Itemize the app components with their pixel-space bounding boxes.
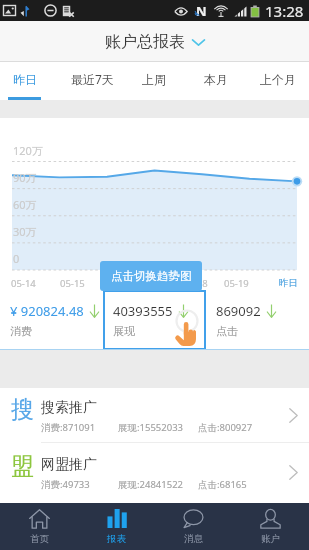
staticText: 点击:68165: [198, 478, 247, 491]
staticText: 上周: [142, 72, 166, 87]
staticText: 消费: [10, 324, 32, 338]
staticText: 昨日: [279, 277, 298, 289]
staticText: 本月: [204, 72, 228, 87]
staticText: 展现:15552033: [118, 421, 184, 434]
staticText: 展现: [113, 324, 135, 338]
staticText: 120万: [13, 143, 43, 158]
button[interactable]: ¥ 920824.48: [0, 290, 103, 350]
button[interactable]: 昨日: [0, 62, 61, 100]
staticText: 搜: [11, 395, 34, 424]
staticText: 05-14: [11, 277, 36, 290]
button[interactable]: 盟: [0, 443, 309, 501]
button[interactable]: 最近7天: [61, 62, 123, 100]
staticText: 05-15: [60, 277, 85, 290]
button[interactable]: 首页: [0, 503, 78, 550]
staticText: 账户总报表: [105, 32, 185, 52]
button[interactable]: 搜: [0, 388, 309, 443]
button[interactable]: 40393555: [103, 290, 206, 350]
staticText: 05-18: [183, 277, 208, 290]
staticText: ¥ 920824.48: [10, 302, 84, 320]
button[interactable]: 账户: [232, 503, 309, 550]
staticText: 30万: [13, 224, 37, 239]
staticText: 网盟推广: [41, 456, 97, 474]
staticText: 40393555: [113, 302, 173, 320]
staticText: 昨日: [13, 72, 37, 87]
staticText: 报表: [107, 533, 126, 545]
staticText: 搜索推广: [41, 399, 97, 417]
staticText: 点击: [216, 324, 238, 338]
button[interactable]: 本月: [185, 62, 247, 100]
button[interactable]: 消息: [155, 503, 232, 550]
button[interactable]: 上周: [123, 62, 185, 100]
staticText: 05-17: [142, 277, 167, 290]
staticText: 869092: [216, 302, 261, 320]
staticText: 盟: [11, 452, 34, 481]
button[interactable]: 上个月: [247, 62, 309, 100]
staticText: 05-19: [224, 277, 249, 290]
button[interactable]: 869092: [206, 290, 309, 350]
staticText: 展现:24841522: [118, 478, 184, 491]
staticText: N: [196, 2, 207, 20]
staticText: 消费:49733: [41, 478, 90, 491]
staticText: 05-16: [101, 277, 126, 290]
staticText: 点击:800927: [198, 421, 253, 434]
staticText: 13:28: [265, 1, 304, 21]
button[interactable]: 点击切换趋势图: [100, 261, 202, 291]
staticText: 账户: [261, 533, 280, 545]
staticText: 0: [13, 251, 20, 266]
staticText: 上个月: [260, 72, 296, 87]
staticText: 首页: [30, 533, 49, 545]
button[interactable]: 报表: [78, 503, 155, 550]
staticText: 消费:871091: [41, 421, 96, 434]
staticText: 消息: [184, 533, 203, 545]
staticText: 最近7天: [71, 71, 114, 87]
staticText: 90万: [13, 170, 37, 185]
staticText: 点击切换趋势图: [111, 269, 192, 283]
button[interactable]: 账户总报表: [93, 28, 217, 56]
staticText: 60万: [13, 197, 37, 212]
